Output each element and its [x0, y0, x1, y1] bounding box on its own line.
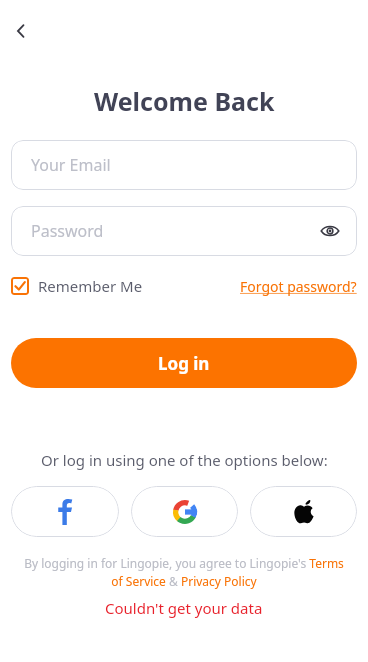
staticText: Your Email	[31, 154, 111, 176]
staticText: Welcome Back	[94, 84, 275, 118]
button[interactable]: Remember Me	[11, 276, 143, 296]
button[interactable]: Log in	[11, 338, 357, 388]
button[interactable]: Sign in with Apple	[250, 486, 357, 537]
button[interactable]: Show password	[315, 216, 345, 246]
button[interactable]: Sign in with Google	[131, 486, 238, 537]
button[interactable]: Password	[11, 206, 357, 256]
staticText: Couldn't get your data	[105, 598, 263, 618]
staticText: Log in	[158, 352, 210, 375]
staticText: Remember Me	[38, 276, 143, 296]
staticText: Forgot password?	[240, 277, 357, 296]
button[interactable]: Back	[4, 14, 38, 48]
button[interactable]: Forgot password?	[240, 277, 357, 296]
staticText: By logging in for Lingopie, you agree to…	[22, 555, 346, 590]
button[interactable]: Sign in with Facebook	[11, 486, 119, 537]
staticText: Password	[31, 220, 104, 242]
button[interactable]: Your Email	[11, 140, 357, 190]
staticText: Or log in using one of the options below…	[41, 450, 328, 470]
